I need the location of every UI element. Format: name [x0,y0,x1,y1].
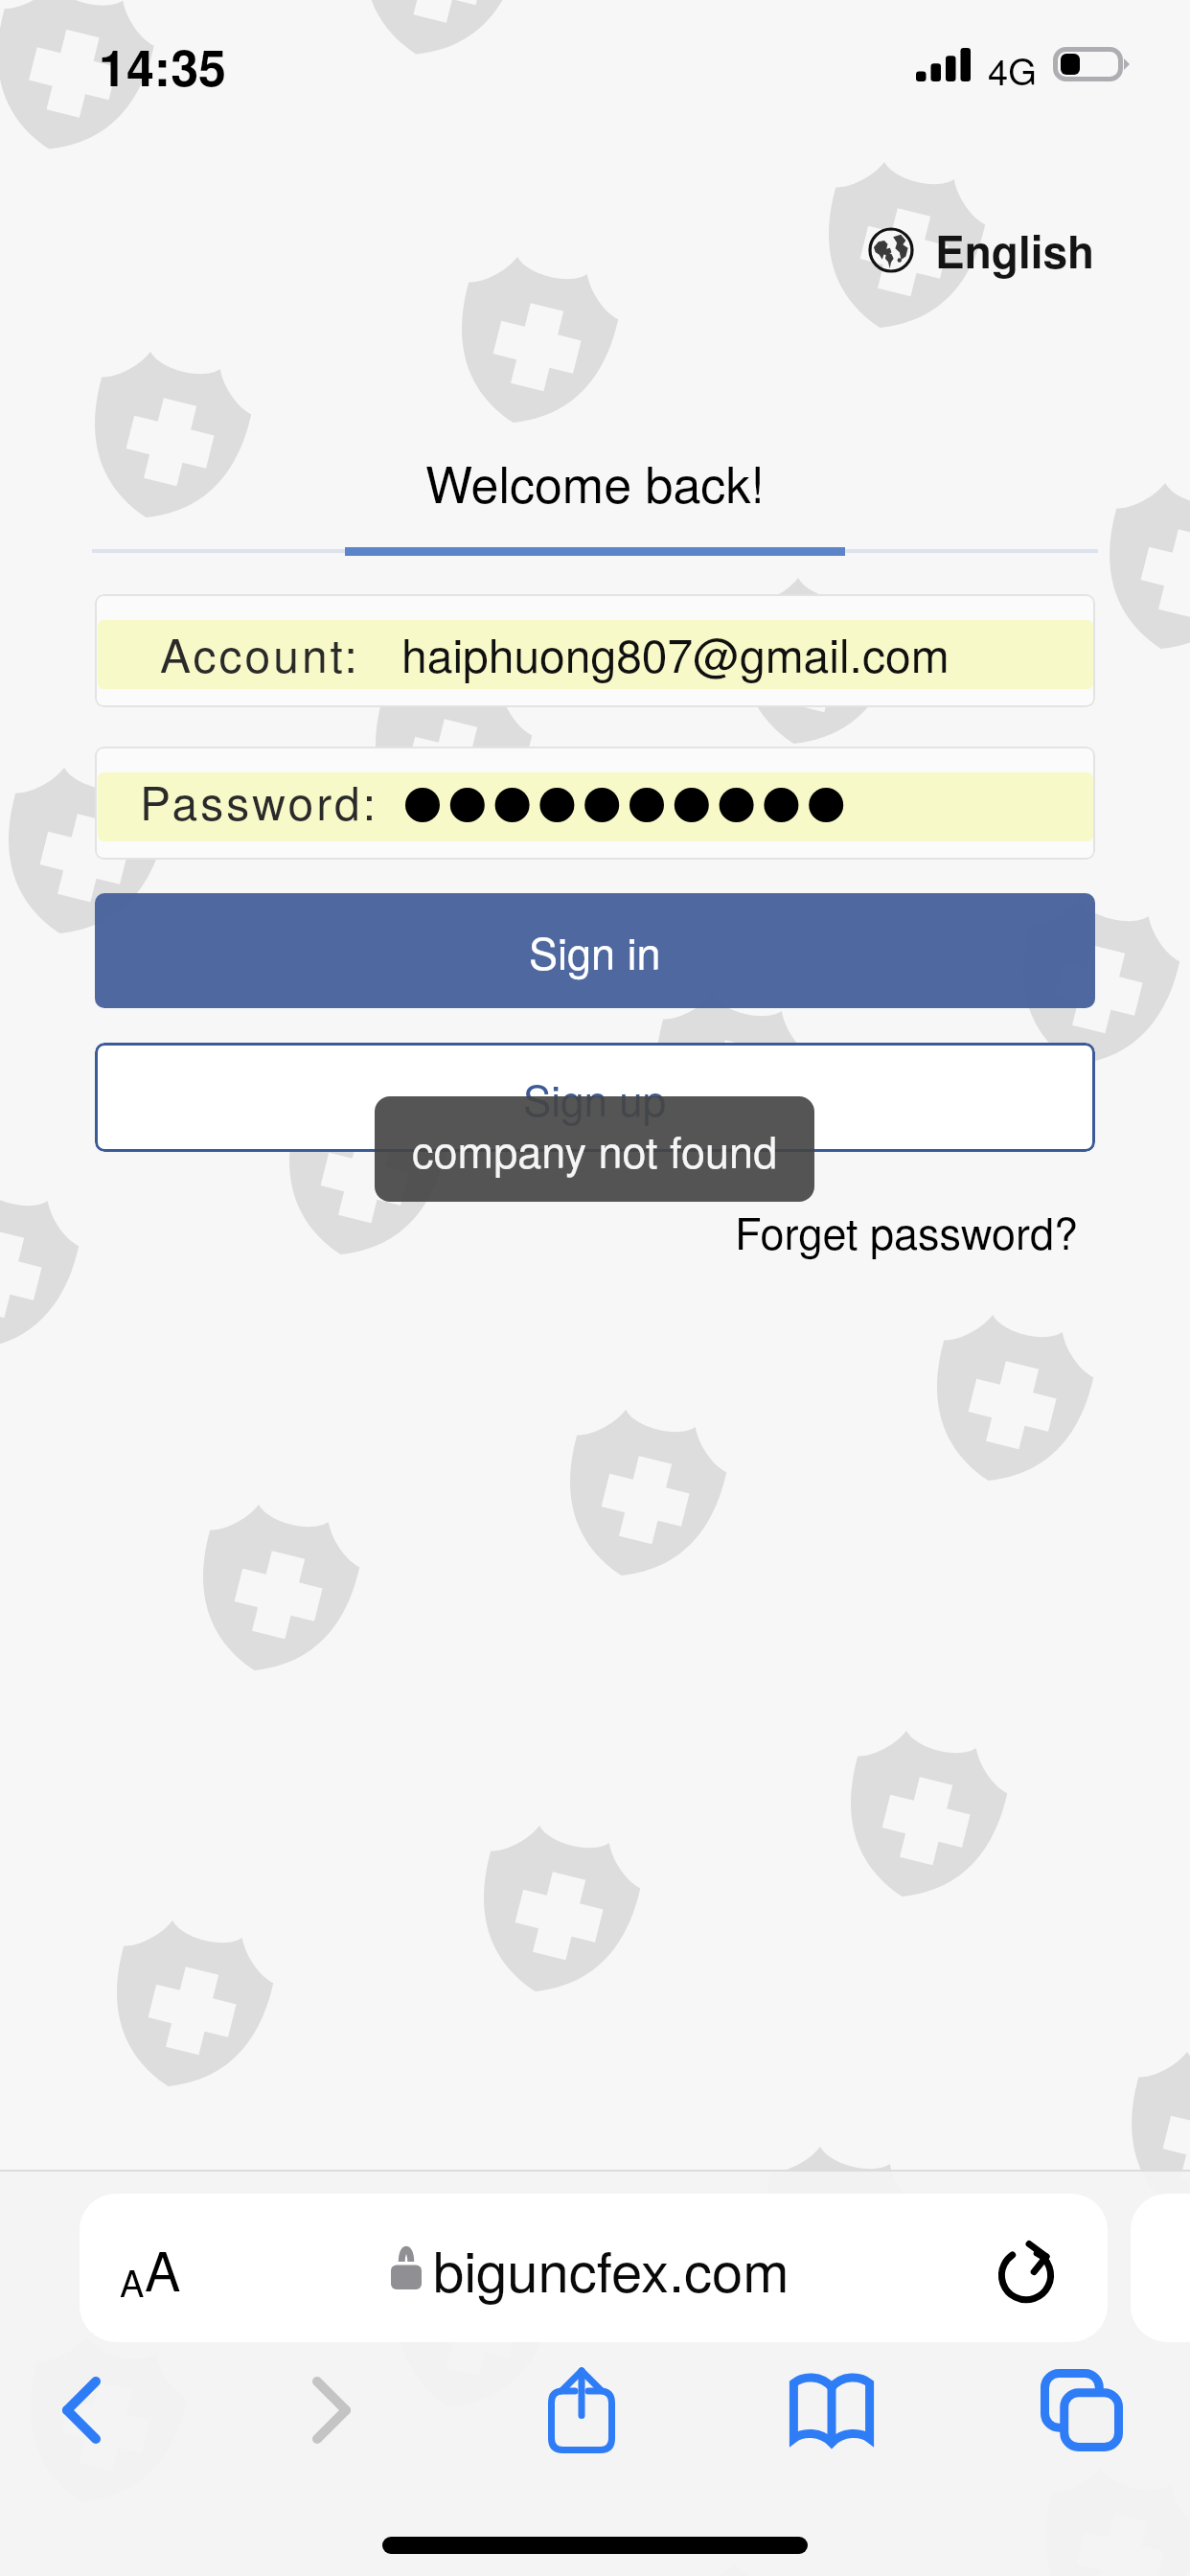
button[interactable]: Sign in [95,893,1095,1008]
button[interactable]: Bookmarks [768,2351,895,2470]
staticText: Account: [160,620,360,686]
staticText: biguncfex.com [433,2228,790,2308]
staticText: haiphuong807@gmail.com [401,620,950,686]
button[interactable]: Sign up [95,1043,1095,1152]
staticText: 14:35 [99,30,226,101]
staticText: Password: [140,768,379,834]
button[interactable]: Password: [95,747,1095,860]
staticText: Sign in [529,920,661,981]
button[interactable]: Account: [95,594,1095,707]
staticText: 4G [988,43,1037,95]
button[interactable]: Tabs [1018,2351,1145,2470]
button[interactable]: Reload [995,2234,1064,2303]
staticText: company not found [412,1118,778,1180]
staticText: English [935,218,1095,282]
button[interactable]: English [868,218,1095,282]
button[interactable]: A [80,2194,1108,2342]
staticText: A [120,2255,145,2307]
staticText: Welcome back! [0,446,1190,517]
button[interactable]: Forget password? [735,1200,1079,1261]
button[interactable]: Back [18,2351,145,2470]
button[interactable]: Forward [268,2351,395,2470]
staticText: A [145,2230,181,2307]
button[interactable]: Share [518,2351,645,2470]
staticText: Sign up [523,1068,667,1128]
